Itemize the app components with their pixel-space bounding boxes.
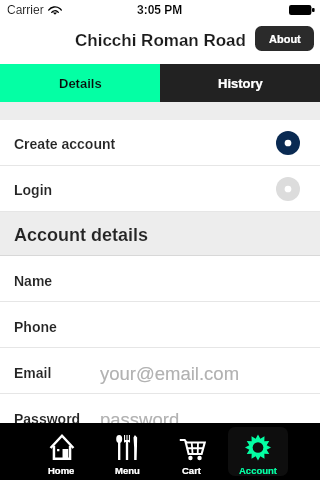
button[interactable]: Phone (0, 302, 320, 348)
staticText: Home (48, 465, 75, 476)
staticText: Details (59, 76, 102, 91)
button[interactable]: Details (0, 64, 160, 102)
staticText: Name (14, 273, 53, 289)
staticText: password (100, 409, 180, 430)
staticText: About (269, 33, 301, 45)
button[interactable]: Account (228, 427, 288, 476)
button[interactable]: Name (0, 256, 320, 302)
staticText: Account details (14, 225, 149, 245)
staticText: your@email.com (100, 363, 240, 384)
button[interactable]: About (255, 26, 314, 51)
staticText: Email (14, 365, 52, 381)
staticText: Password (14, 411, 81, 427)
button[interactable]: History (160, 64, 320, 102)
staticText: History (218, 76, 263, 91)
button[interactable]: Email (0, 348, 320, 394)
staticText: Login (14, 182, 53, 198)
staticText: Carrier (7, 3, 44, 16)
button[interactable]: Create account (0, 120, 320, 166)
staticText: Chicchi Roman Road (75, 31, 246, 50)
staticText: Menu (115, 465, 140, 476)
button[interactable]: Password (0, 394, 320, 440)
staticText: 3:05 PM (137, 3, 183, 16)
button[interactable]: Login (0, 166, 320, 212)
staticText: Account (239, 465, 277, 476)
button[interactable]: Menu (97, 427, 156, 476)
staticText: Phone (14, 319, 57, 335)
button[interactable]: Cart (162, 427, 222, 476)
staticText: Create account (14, 136, 116, 152)
staticText: Cart (182, 465, 202, 476)
button[interactable]: Home (32, 427, 91, 476)
